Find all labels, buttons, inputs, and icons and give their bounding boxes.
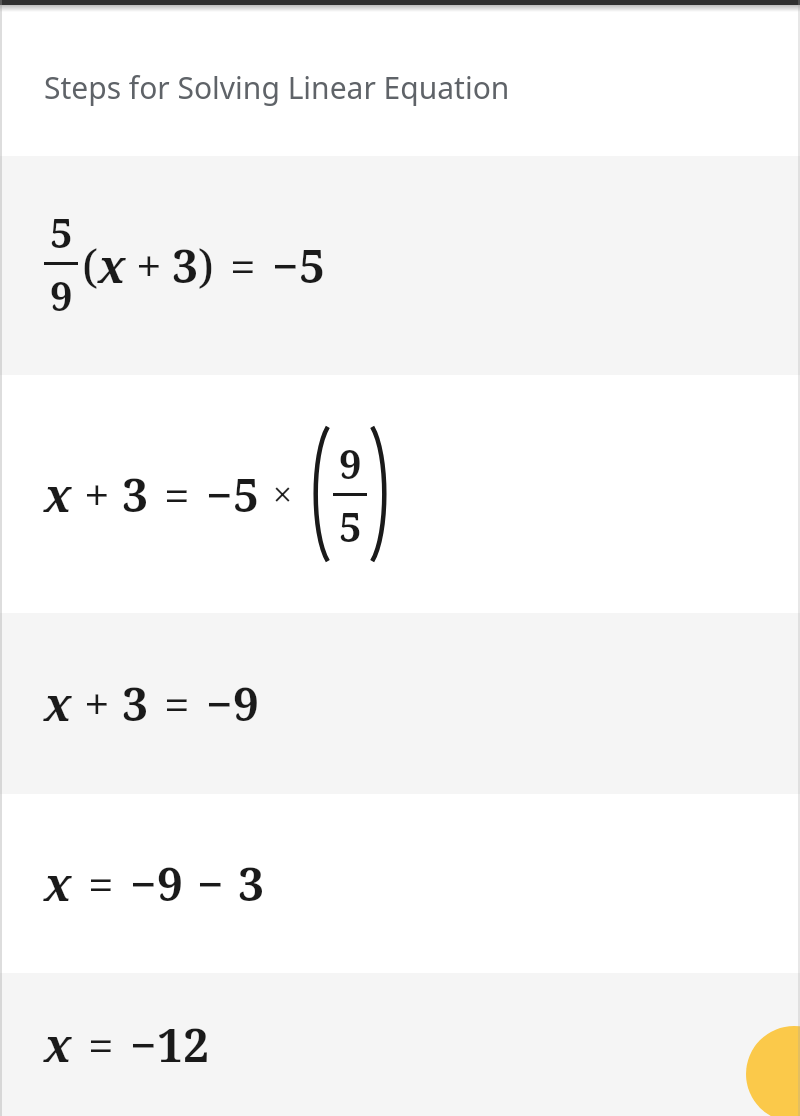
staticText: 3 — [122, 672, 148, 735]
staticText: ( — [82, 234, 98, 297]
staticText: = — [88, 852, 114, 915]
staticText: − — [130, 852, 157, 915]
button[interactable]: x — [0, 375, 800, 613]
staticText: 3 — [238, 852, 264, 915]
staticText: Steps for Solving Linear Equation — [44, 67, 510, 108]
staticText: x — [44, 672, 72, 735]
staticText: = — [164, 463, 190, 526]
staticText: 3 — [172, 234, 198, 297]
staticText: 3 — [122, 463, 148, 526]
button[interactable]: x — [0, 613, 800, 794]
staticText: 9 — [157, 852, 183, 915]
staticText: x — [44, 463, 72, 526]
staticText: x — [44, 852, 72, 915]
staticText: 5 — [50, 205, 73, 259]
staticText: − — [206, 463, 233, 526]
staticText: x — [98, 234, 126, 297]
staticText: = — [164, 672, 190, 735]
staticText: x — [44, 1013, 72, 1076]
staticText: − — [197, 852, 224, 915]
staticText: 12 — [157, 1013, 209, 1076]
staticText: + — [84, 463, 110, 526]
staticText: 9 — [50, 268, 73, 322]
staticText: ) — [198, 234, 214, 297]
button[interactable]: Help — [746, 1026, 800, 1116]
staticText: + — [136, 234, 162, 297]
staticText: 9 — [233, 672, 259, 735]
button[interactable]: 5 — [0, 156, 800, 375]
staticText: × — [273, 471, 293, 517]
button[interactable]: x — [0, 973, 800, 1116]
staticText: = — [230, 234, 256, 297]
staticText: − — [206, 672, 233, 735]
staticText: 5 — [299, 234, 325, 297]
button[interactable]: x — [0, 794, 800, 973]
staticText: 5 — [339, 499, 362, 553]
staticText: 9 — [339, 436, 362, 490]
staticText: − — [130, 1013, 157, 1076]
staticText: + — [84, 672, 110, 735]
staticText: 5 — [233, 463, 259, 526]
staticText: = — [88, 1013, 114, 1076]
staticText: − — [272, 234, 299, 297]
